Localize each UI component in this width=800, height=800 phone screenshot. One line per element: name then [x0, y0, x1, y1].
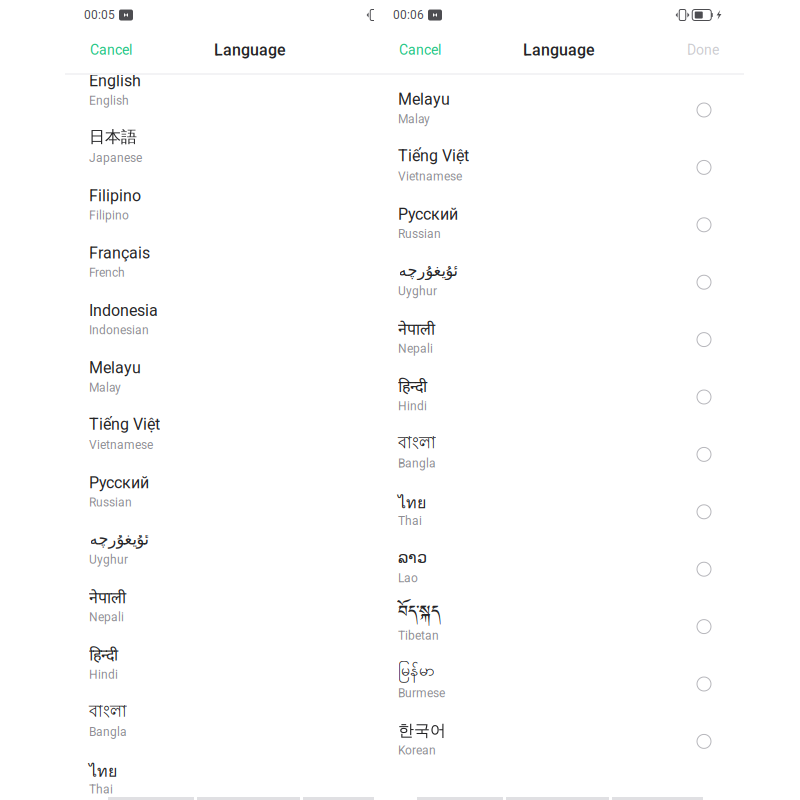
button[interactable]: Cancel	[399, 35, 453, 68]
staticText: 00:06	[393, 8, 424, 22]
button[interactable]: Tibetan	[374, 599, 744, 656]
staticText: Russian	[398, 227, 441, 241]
staticText: ไทย	[398, 490, 426, 515]
button[interactable]: English	[65, 63, 435, 121]
button[interactable]: Malay	[374, 82, 744, 139]
button[interactable]: Nepali	[374, 312, 744, 369]
button[interactable]: Done	[675, 35, 719, 68]
staticText: Done	[687, 42, 719, 58]
staticText: བོད་སྐད	[398, 596, 441, 630]
staticText: Lao	[398, 571, 418, 585]
staticText: Русский	[398, 205, 458, 224]
staticText: English	[89, 93, 129, 108]
button[interactable]: Hindi	[65, 637, 435, 695]
staticText: Korean	[398, 743, 436, 757]
staticText: Malay	[89, 380, 121, 395]
staticText: Language	[214, 41, 286, 59]
staticText: Indonesian	[89, 323, 149, 337]
staticText: বাংলা	[398, 432, 436, 455]
staticText: ไทย	[89, 758, 117, 784]
staticText: 한국어	[398, 720, 446, 741]
button[interactable]: Burmese	[374, 656, 744, 713]
staticText: Tiếng Việt	[398, 146, 469, 165]
staticText: Cancel	[90, 42, 132, 58]
button[interactable]: Korean	[374, 713, 744, 771]
button[interactable]: Cancel	[90, 35, 144, 68]
button[interactable]: Indonesian	[65, 293, 435, 350]
button[interactable]: Thai	[374, 484, 744, 541]
staticText: Language	[523, 41, 595, 59]
staticText: Nepali	[398, 342, 433, 356]
staticText: Uyghur	[398, 284, 437, 298]
staticText: Tiếng Việt	[89, 415, 160, 434]
staticText: Melayu	[89, 358, 141, 377]
button[interactable]: Nepali	[65, 580, 435, 637]
button[interactable]: Back	[303, 797, 394, 800]
staticText: ئۇيغۇرچە	[89, 530, 148, 548]
staticText: हिन्दी	[398, 375, 427, 397]
staticText: Filipino	[89, 186, 141, 205]
staticText: বাংলা	[89, 701, 127, 723]
button[interactable]: Uyghur	[374, 254, 744, 312]
staticText: ລາວ	[398, 548, 427, 567]
staticText: Filipino	[89, 208, 129, 222]
staticText: Done	[378, 42, 410, 58]
staticText: Русский	[89, 473, 149, 492]
staticText: ئۇيغۇرچە	[398, 261, 457, 280]
button[interactable]: Thai	[65, 752, 435, 800]
staticText: English	[89, 71, 141, 90]
staticText: မြန်မာ	[398, 660, 435, 684]
staticText: Bangla	[89, 725, 127, 739]
staticText: हिन्दी	[89, 643, 118, 665]
staticText: Burmese	[398, 686, 445, 700]
button[interactable]: Japanese	[65, 121, 435, 178]
button[interactable]: French	[65, 236, 435, 293]
staticText: Malay	[398, 112, 430, 126]
staticText: Thai	[398, 514, 422, 528]
staticText: Thai	[89, 782, 113, 796]
staticText: Hindi	[398, 399, 427, 413]
staticText: नेपाली	[398, 318, 435, 339]
staticText: Hindi	[89, 667, 118, 682]
staticText: Français	[89, 244, 150, 262]
button[interactable]: Done	[366, 35, 410, 68]
staticText: Russian	[89, 495, 132, 509]
staticText: Vietnamese	[398, 169, 462, 183]
button[interactable]: Malay	[65, 350, 435, 408]
staticText: Bangla	[398, 456, 436, 470]
staticText: Uyghur	[89, 553, 128, 567]
button[interactable]: Hindi	[374, 369, 744, 426]
staticText: 00:05	[84, 8, 115, 22]
button[interactable]: Vietnamese	[374, 139, 744, 197]
staticText: Tibetan	[398, 629, 439, 643]
button[interactable]: Vietnamese	[65, 408, 435, 465]
staticText: Japanese	[89, 151, 142, 165]
staticText: Nepali	[89, 610, 124, 624]
button[interactable]: Bangla	[374, 426, 744, 484]
staticText: Indonesia	[89, 301, 158, 320]
button[interactable]: Russian	[374, 197, 744, 254]
button[interactable]: Lao	[374, 541, 744, 599]
staticText: French	[89, 266, 125, 280]
staticText: Melayu	[398, 90, 450, 109]
staticText: Cancel	[399, 42, 441, 58]
button[interactable]: Russian	[65, 465, 435, 523]
button[interactable]: Uyghur	[65, 523, 435, 580]
button[interactable]: Filipino	[65, 178, 435, 236]
button[interactable]: Bangla	[65, 695, 435, 752]
staticText: नेपाली	[89, 586, 126, 608]
staticText: Vietnamese	[89, 438, 153, 452]
staticText: 日本語	[89, 127, 137, 147]
